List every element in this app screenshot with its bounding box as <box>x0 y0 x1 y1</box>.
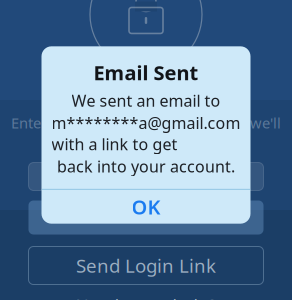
staticText: Enter your username or email and we'll <box>11 113 281 132</box>
staticText: OK <box>131 193 160 220</box>
staticText: back into your account. <box>57 156 235 177</box>
staticText: Send Login Link <box>76 253 216 278</box>
staticText: Email Sent <box>93 59 198 86</box>
button[interactable]: Need more help? <box>75 294 216 300</box>
button[interactable]: Send Login Link <box>28 246 263 284</box>
staticText: We sent an email to <box>71 90 220 111</box>
button[interactable]: OK <box>41 190 250 224</box>
staticText: Need more help? <box>75 294 216 300</box>
staticText: m********a@gmail.com with a link to get <box>51 112 240 155</box>
staticText: Trouble logging in? <box>58 78 234 105</box>
